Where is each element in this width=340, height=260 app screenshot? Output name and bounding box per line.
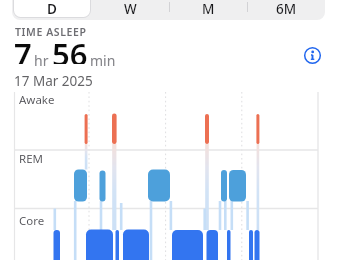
staticText: REM	[19, 151, 43, 167]
staticText: Awake	[19, 92, 55, 108]
staticText: W	[124, 0, 137, 17]
staticText: 17 Mar 2025	[14, 72, 93, 90]
staticText: M	[202, 0, 215, 17]
button[interactable]: W	[91, 0, 169, 17]
staticText: TIME ASLEEP	[15, 25, 87, 39]
button[interactable]	[303, 46, 322, 65]
button[interactable]: M	[169, 0, 247, 17]
staticText: 7	[14, 33, 32, 64]
staticText: 6M	[276, 0, 297, 17]
staticText: min	[90, 51, 116, 70]
staticText: 56	[52, 33, 88, 64]
staticText: hr	[34, 51, 49, 70]
button[interactable]: 6M	[247, 0, 325, 17]
staticText: D	[47, 0, 57, 17]
button[interactable]: D	[12, 0, 91, 17]
staticText: Core	[19, 213, 45, 229]
